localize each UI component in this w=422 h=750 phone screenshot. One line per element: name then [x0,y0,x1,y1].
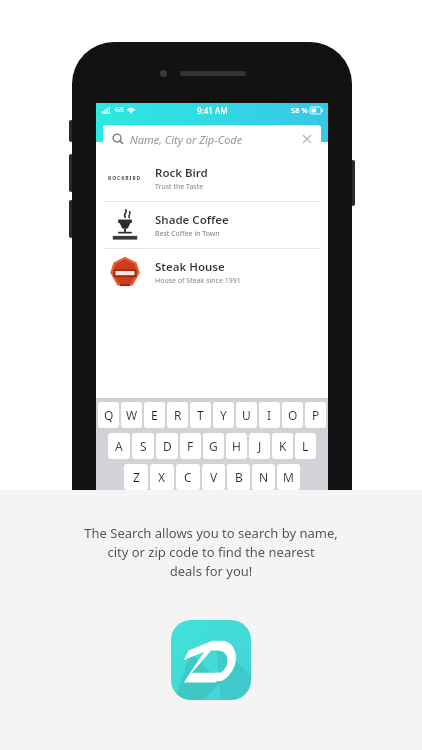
staticText: Z [133,469,140,485]
staticText: Shade Coffee [155,212,229,228]
button[interactable]: App icon [171,620,251,700]
staticText: O [288,407,298,423]
button[interactable]: O [282,402,303,428]
staticText: C [184,469,192,485]
button[interactable]: C [176,464,200,490]
button[interactable]: S [132,433,154,459]
staticText: The Search allows you to search by name,… [40,524,382,580]
button[interactable]: ROCKBIRD [96,155,328,201]
button[interactable]: V [202,464,225,490]
staticText: T [197,407,204,423]
staticText: Best Coffee in Town [155,229,220,239]
staticText: Rock Bird [155,165,208,181]
staticText: F [187,438,194,454]
button[interactable]: N [252,464,275,490]
staticText: Trust the Taste [155,182,204,192]
staticText: S [140,438,147,454]
staticText: 9:41 AM [197,105,228,116]
staticText: Y [220,407,227,423]
staticText: G [209,438,218,454]
button[interactable]: W [121,402,142,428]
staticText: W [126,407,138,423]
staticText: X [158,469,166,485]
staticText: Q [104,407,114,423]
staticText: N [259,469,269,485]
staticText: H [232,438,241,454]
button[interactable]: Y [213,402,234,428]
button[interactable]: A [108,433,130,459]
button[interactable]: Steak House [96,249,328,295]
staticText: P [312,407,320,423]
button[interactable]: I [259,402,280,428]
staticText: GS [115,105,124,115]
button[interactable]: J [249,433,270,459]
staticText: D [163,438,172,454]
button[interactable]: T [190,402,211,428]
staticText: J [258,438,262,454]
staticText: K [279,438,287,454]
button[interactable]: Z [124,464,148,490]
button[interactable]: E [144,402,165,428]
button[interactable]: P [305,402,326,428]
button[interactable]: D [156,433,178,459]
staticText: R [174,407,182,423]
staticText: I [267,407,272,423]
button[interactable]: R [167,402,188,428]
staticText: ROCKBIRD [108,175,142,182]
staticText: B [235,469,243,485]
button[interactable]: K [272,433,293,459]
staticText: L [302,438,309,454]
staticText: V [210,469,218,485]
button[interactable]: L [295,433,316,459]
button[interactable]: G [203,433,224,459]
button[interactable]: Name, City or Zip-Code [103,125,321,153]
button[interactable]: U [236,402,257,428]
staticText: M [283,469,294,485]
staticText: House of Steak since 1991 [155,276,241,286]
staticText: U [242,407,251,423]
button[interactable]: Shade Coffee [96,202,328,248]
button[interactable]: B [227,464,250,490]
staticText: Name, City or Zip-Code [130,132,243,147]
button[interactable]: H [226,433,247,459]
button[interactable]: F [180,433,201,459]
staticText: A [115,438,123,454]
button[interactable]: M [277,464,300,490]
staticText: Steak House [155,259,225,275]
button[interactable]: Q [98,402,119,428]
staticText: E [151,407,158,423]
button[interactable]: X [150,464,174,490]
staticText: 58 % [291,105,308,115]
